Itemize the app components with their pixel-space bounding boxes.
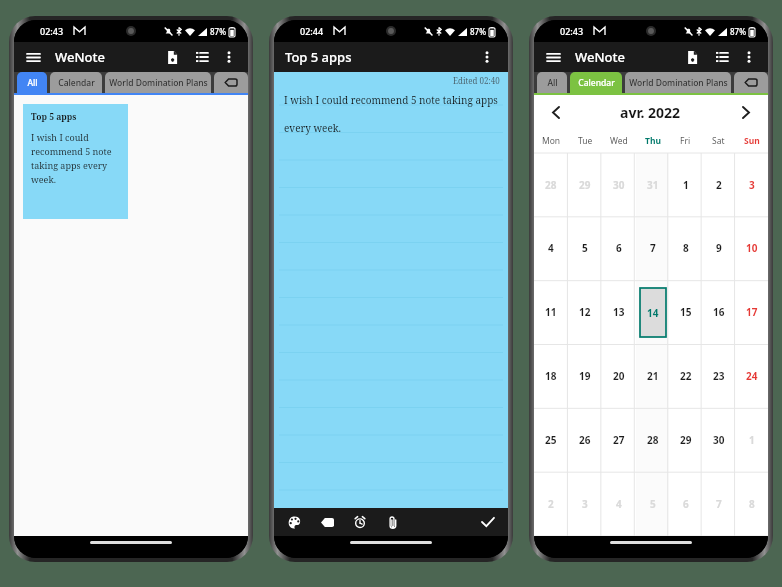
button[interactable]: 1: [735, 408, 768, 472]
staticText: 30: [713, 433, 725, 447]
staticText: 3: [749, 178, 755, 192]
staticText: Sat: [712, 135, 725, 147]
button[interactable]: 7: [702, 472, 735, 536]
button[interactable]: 4: [534, 216, 568, 280]
button[interactable]: Next month: [735, 101, 757, 123]
button[interactable]: List view: [191, 46, 213, 68]
button[interactable]: Reminder: [349, 511, 371, 533]
button[interactable]: 1: [669, 153, 702, 216]
button[interactable]: New note: [161, 46, 183, 68]
button[interactable]: 7: [636, 216, 669, 280]
button[interactable]: 21: [636, 344, 669, 408]
staticText: Calendar: [578, 77, 615, 89]
staticText: 87%: [210, 26, 226, 37]
button[interactable]: 13: [602, 280, 636, 344]
staticText: World Domination Plans: [109, 77, 208, 89]
button[interactable]: 8: [735, 472, 768, 536]
button[interactable]: 28: [636, 408, 669, 472]
button[interactable]: 6: [669, 472, 702, 536]
button[interactable]: 2: [702, 153, 735, 216]
button[interactable]: 15: [669, 280, 702, 344]
staticText: 6: [616, 241, 622, 255]
button[interactable]: More options: [219, 47, 239, 67]
staticText: 2: [548, 497, 554, 511]
button[interactable]: Previous month: [545, 101, 567, 123]
button[interactable]: 3: [735, 153, 768, 216]
button[interactable]: 23: [702, 344, 735, 408]
button[interactable]: 6: [602, 216, 636, 280]
button[interactable]: 4: [602, 472, 636, 536]
button[interactable]: Save: [477, 511, 499, 533]
button[interactable]: 30: [602, 153, 636, 216]
staticText: 15: [680, 305, 692, 319]
staticText: Sun: [744, 135, 760, 147]
button[interactable]: Calendar: [50, 72, 102, 93]
button[interactable]: 20: [602, 344, 636, 408]
button[interactable]: 24: [735, 344, 768, 408]
button[interactable]: 19: [568, 344, 602, 408]
staticText: Wed: [610, 135, 628, 147]
staticText: 25: [545, 433, 557, 447]
button[interactable]: 29: [669, 408, 702, 472]
button[interactable]: World Domination Plans: [105, 72, 211, 93]
button[interactable]: Attach: [382, 511, 404, 533]
button[interactable]: 28: [534, 153, 568, 216]
button[interactable]: Color: [283, 511, 305, 533]
staticText: 26: [579, 433, 591, 447]
button[interactable]: All: [17, 72, 47, 93]
button[interactable]: More options: [739, 47, 759, 67]
button[interactable]: 5: [568, 216, 602, 280]
staticText: 31: [647, 178, 659, 192]
staticText: 02:43: [560, 25, 584, 37]
button[interactable]: 18: [534, 344, 568, 408]
staticText: 02:44: [300, 25, 324, 37]
button[interactable]: 5: [636, 472, 669, 536]
staticText: 17: [746, 305, 758, 319]
staticText: 29: [579, 178, 591, 192]
button[interactable]: Menu: [543, 47, 564, 68]
button[interactable]: 25: [534, 408, 568, 472]
staticText: World Domination Plans: [629, 77, 728, 89]
button[interactable]: 26: [568, 408, 602, 472]
staticText: Mon: [542, 135, 561, 147]
button[interactable]: 2: [534, 472, 568, 536]
button[interactable]: 9: [702, 216, 735, 280]
button[interactable]: Calendar: [570, 72, 622, 93]
staticText: 6: [683, 497, 689, 511]
button[interactable]: World Domination Plans: [625, 72, 731, 93]
button[interactable]: 16: [702, 280, 735, 344]
staticText: 9: [716, 241, 722, 255]
staticText: WeNote: [55, 48, 105, 66]
button[interactable]: 14: [636, 280, 669, 344]
button[interactable]: 12: [568, 280, 602, 344]
staticText: 4: [616, 497, 622, 511]
staticText: WeNote: [575, 48, 625, 66]
staticText: I wish I could recommend 5 note taking a…: [31, 131, 122, 185]
button[interactable]: All: [537, 72, 567, 93]
staticText: Calendar: [58, 77, 95, 89]
button[interactable]: 29: [568, 153, 602, 216]
staticText: 21: [647, 369, 659, 383]
button[interactable]: 22: [669, 344, 702, 408]
button[interactable]: More options: [477, 47, 497, 67]
staticText: 4: [548, 241, 554, 255]
button[interactable]: Label: [316, 511, 338, 533]
button[interactable]: 8: [669, 216, 702, 280]
button[interactable]: 31: [636, 153, 669, 216]
button[interactable]: 10: [735, 216, 768, 280]
button[interactable]: Menu: [23, 47, 44, 68]
button[interactable]: Top 5 apps: [23, 104, 128, 219]
button[interactable]: 3: [568, 472, 602, 536]
staticText: 1: [749, 433, 755, 447]
button[interactable]: Labels: [214, 72, 248, 93]
button[interactable]: New note: [681, 46, 703, 68]
staticText: 8: [749, 497, 755, 511]
button[interactable]: 27: [602, 408, 636, 472]
button[interactable]: List view: [711, 46, 733, 68]
button[interactable]: Labels: [734, 72, 768, 93]
button[interactable]: 30: [702, 408, 735, 472]
button[interactable]: 11: [534, 280, 568, 344]
button[interactable]: 17: [735, 280, 768, 344]
staticText: 7: [650, 241, 656, 255]
staticText: Tue: [578, 135, 593, 147]
